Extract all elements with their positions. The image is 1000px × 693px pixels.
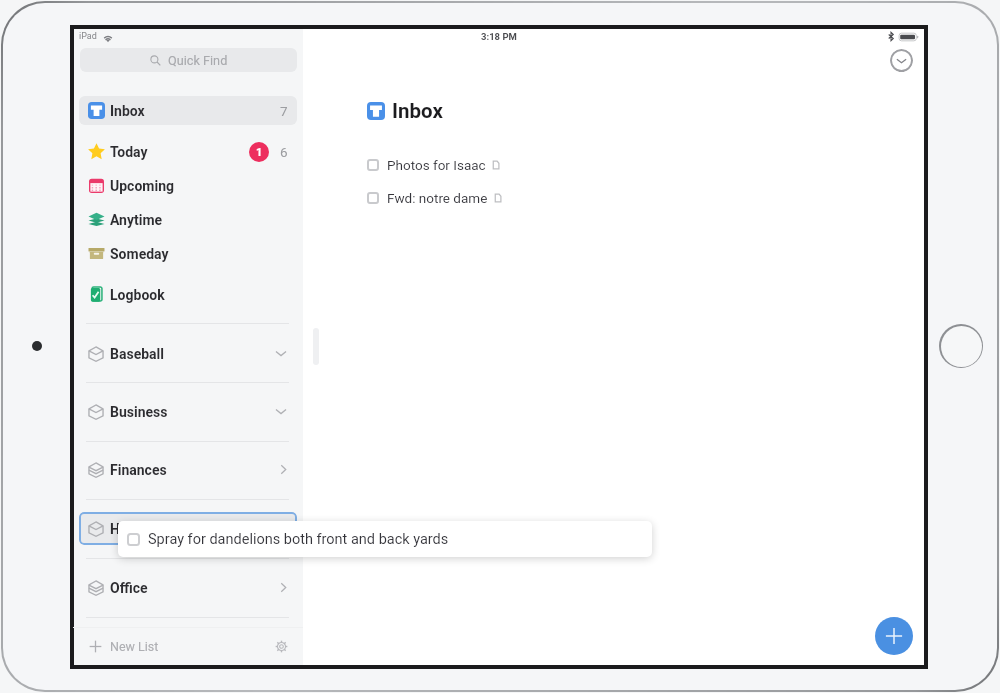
- staticText: Quick Find: [168, 53, 228, 68]
- button[interactable]: New To-Do: [875, 617, 913, 655]
- staticText: Home: [110, 521, 148, 537]
- button[interactable]: Logbook: [79, 280, 297, 309]
- button[interactable]: Someday: [79, 239, 297, 268]
- button[interactable]: Home: [79, 512, 297, 545]
- button[interactable]: Photos for Isaac: [367, 156, 500, 174]
- staticText: Baseball: [110, 346, 165, 362]
- staticText: 6: [280, 144, 288, 160]
- staticText: Inbox: [110, 103, 145, 119]
- button[interactable]: Anytime: [79, 205, 297, 234]
- staticText: Upcoming: [110, 178, 174, 194]
- staticText: New List: [110, 639, 159, 654]
- staticText: Someday: [110, 246, 169, 262]
- button[interactable]: Collapse all: [890, 49, 913, 72]
- button[interactable]: Business: [79, 395, 297, 428]
- staticText: Business: [110, 404, 168, 420]
- staticText: Inbox: [392, 99, 443, 123]
- button[interactable]: Upcoming: [79, 171, 297, 200]
- staticText: Office: [110, 580, 148, 596]
- button[interactable]: Office: [79, 571, 297, 604]
- staticText: Fwd: notre dame: [387, 190, 488, 206]
- staticText: Logbook: [110, 287, 165, 303]
- button[interactable]: Spray for dandelions both front and back…: [118, 521, 652, 557]
- staticText: Anytime: [110, 212, 163, 228]
- staticText: 3:18 PM: [481, 31, 517, 42]
- button[interactable]: Today: [79, 137, 297, 166]
- staticText: iPad: [79, 31, 97, 42]
- staticText: 1: [256, 146, 263, 159]
- button[interactable]: New List: [78, 628, 298, 664]
- button[interactable]: Quick Find: [80, 48, 297, 72]
- button[interactable]: Fwd: notre dame: [367, 189, 502, 207]
- staticText: 7: [280, 103, 288, 119]
- button[interactable]: Inbox: [367, 99, 443, 123]
- staticText: Spray for dandelions both front and back…: [148, 531, 449, 548]
- button[interactable]: Baseball: [79, 337, 297, 370]
- button[interactable]: Inbox: [79, 96, 297, 125]
- button[interactable]: Finances: [79, 453, 297, 486]
- staticText: Photos for Isaac: [387, 157, 486, 173]
- staticText: Today: [110, 144, 148, 160]
- staticText: Finances: [110, 462, 167, 478]
